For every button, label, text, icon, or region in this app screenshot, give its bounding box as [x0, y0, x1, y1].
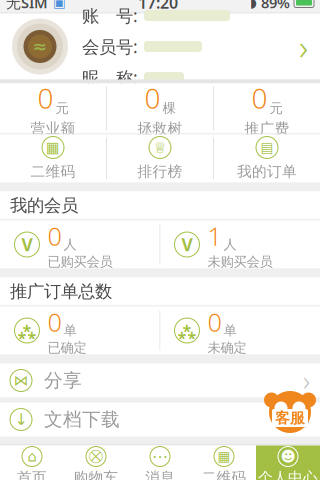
staticText: ≈: [32, 37, 47, 56]
staticText: ⁂: [18, 320, 36, 341]
staticText: 元: [269, 100, 282, 117]
button[interactable]: 0: [0, 83, 106, 133]
staticText: V: [21, 233, 32, 256]
button[interactable]: ▦: [192, 445, 256, 480]
staticText: 未确定: [207, 340, 246, 356]
staticText: 首页: [17, 468, 47, 480]
staticText: 0: [251, 79, 267, 117]
staticText: ▣: [53, 0, 66, 10]
staticText: 0: [47, 305, 61, 339]
staticText: 文档下载: [44, 408, 120, 431]
staticText: ☻: [280, 448, 295, 465]
staticText: 消息: [145, 468, 175, 480]
staticText: ⁂: [178, 320, 196, 341]
staticText: ›: [303, 363, 310, 398]
button[interactable]: ♕: [107, 134, 213, 182]
staticText: 元: [55, 100, 68, 117]
staticText: 0: [144, 79, 160, 117]
button[interactable]: ▤: [214, 134, 320, 182]
staticText: 营业额: [30, 120, 75, 138]
staticText: 17:20: [138, 0, 178, 13]
staticText: ▤: [260, 140, 273, 155]
staticText: 客服: [275, 409, 305, 427]
staticText: 0: [47, 219, 61, 253]
staticText: 分享: [44, 369, 82, 392]
staticText: ▦: [217, 449, 230, 464]
staticText: ›: [303, 402, 310, 437]
button[interactable]: ⋯: [128, 445, 192, 480]
staticText: ◗: [250, 0, 257, 10]
staticText: 我的会员: [10, 195, 78, 216]
staticText: 昵 称:: [82, 66, 138, 89]
staticText: 无SIM: [6, 0, 48, 12]
staticText: 单: [223, 322, 236, 339]
staticText: 二维码: [30, 162, 75, 180]
staticText: ▦: [46, 139, 60, 156]
button[interactable]: ⌂: [0, 445, 64, 480]
staticText: V: [181, 233, 192, 256]
staticText: ⌂: [27, 448, 36, 465]
staticText: 1: [207, 219, 221, 253]
staticText: 会员号:: [82, 35, 138, 58]
staticText: ⋯: [152, 447, 168, 466]
button[interactable]: ↓: [0, 402, 320, 436]
staticText: 二维码: [201, 468, 246, 480]
staticText: 0: [207, 305, 221, 339]
staticText: ⛒: [89, 450, 103, 463]
button[interactable]: V: [160, 220, 319, 268]
staticText: 账 号:: [82, 4, 138, 27]
button[interactable]: 0: [107, 83, 213, 133]
button[interactable]: 客服: [266, 388, 314, 436]
staticText: 排行榜: [137, 162, 182, 180]
staticText: 单: [63, 322, 76, 339]
staticText: 推广订单总数: [10, 281, 112, 302]
staticText: ♕: [153, 139, 166, 156]
button[interactable]: ⁂: [0, 306, 159, 354]
staticText: 未购买会员: [207, 254, 272, 270]
staticText: 已确定: [47, 340, 86, 356]
staticText: ↓: [14, 410, 27, 429]
button[interactable]: ⁂: [160, 306, 319, 354]
button[interactable]: 0: [214, 83, 320, 133]
button[interactable]: V: [0, 220, 159, 268]
staticText: ›: [299, 23, 308, 69]
staticText: 我的订单: [237, 162, 297, 180]
staticText: 0: [37, 79, 53, 117]
button[interactable]: ▦: [0, 134, 106, 182]
button[interactable]: ⛒: [64, 445, 128, 480]
button[interactable]: ≈: [0, 13, 320, 79]
staticText: 已购买会员: [47, 254, 112, 270]
staticText: ⋈: [13, 372, 28, 389]
staticText: 人: [63, 236, 76, 253]
staticText: 人: [223, 236, 236, 253]
button[interactable]: ⋈: [0, 363, 320, 397]
staticText: 个人中心: [258, 468, 318, 480]
staticText: 89%: [261, 0, 290, 12]
staticText: 购物车: [73, 468, 118, 480]
staticText: 棵: [162, 100, 175, 117]
staticText: 拯救树: [137, 120, 182, 138]
staticText: 推广费: [244, 120, 289, 138]
button[interactable]: ☻: [256, 445, 320, 480]
